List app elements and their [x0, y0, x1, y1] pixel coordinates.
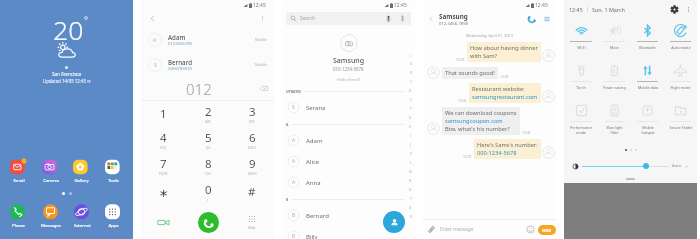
button[interactable]: Torch [564, 60, 598, 100]
button[interactable]: # [230, 179, 274, 205]
button[interactable]: Back [426, 14, 436, 24]
staticText: A [292, 137, 296, 144]
staticText: K [410, 152, 412, 156]
button[interactable]: Camera [42, 158, 59, 183]
button[interactable]: B [282, 205, 415, 226]
button[interactable]: 5 [186, 127, 230, 153]
button[interactable]: Delete [257, 82, 270, 95]
button[interactable]: How about having dinner [467, 42, 541, 62]
button[interactable]: Wi-Fi [564, 20, 598, 60]
button[interactable]: Mute [598, 20, 631, 60]
button[interactable]: More options [257, 13, 268, 24]
button[interactable]: Phone [10, 203, 27, 228]
staticText: JKL [206, 146, 211, 150]
staticText: Bluetooth [639, 45, 656, 50]
button[interactable]: Mobile hotspot [631, 100, 664, 140]
button[interactable]: Apps [105, 203, 122, 228]
staticText: Btw, what's his number? [445, 125, 510, 133]
staticText: M [409, 170, 412, 174]
button[interactable]: Internet [74, 203, 91, 228]
button[interactable]: A [282, 151, 415, 172]
button[interactable]: B [282, 226, 415, 239]
staticText: 12:34 [500, 74, 509, 78]
staticText: S [292, 104, 295, 111]
staticText: L [410, 161, 412, 165]
button[interactable] [582, 162, 669, 170]
button[interactable]: A [282, 172, 415, 193]
button[interactable]: 2 [186, 101, 230, 127]
button[interactable]: Search [286, 12, 411, 25]
button[interactable]: SEND [538, 225, 556, 235]
button[interactable]: That sounds good! [442, 67, 498, 79]
button[interactable]: 8 [186, 153, 230, 179]
button[interactable]: 7 [141, 153, 186, 179]
button[interactable]: S [141, 52, 274, 77]
button[interactable]: Blue light filter [598, 100, 631, 140]
button[interactable]: Gallery [73, 158, 90, 183]
button[interactable]: 9 [230, 153, 274, 179]
button[interactable]: 1 [141, 101, 186, 127]
staticText: D [409, 89, 412, 93]
button[interactable]: Call [186, 205, 230, 239]
staticText: 4 [160, 130, 167, 146]
button[interactable]: Video call [141, 205, 186, 239]
button[interactable]: Secure Folder [664, 100, 697, 140]
staticText: Mobile [255, 62, 268, 67]
staticText: UPDATES [286, 89, 301, 94]
button[interactable]: Call [527, 14, 537, 24]
button[interactable]: Settings [670, 5, 679, 14]
button[interactable]: 0 [186, 179, 230, 205]
button[interactable]: A [282, 130, 415, 151]
button[interactable]: We can download coupons [442, 107, 520, 135]
button[interactable]: 4 [141, 127, 186, 153]
button[interactable]: More options [542, 14, 552, 24]
staticText: Performance mode [570, 125, 592, 135]
staticText: Auto-rotate [671, 45, 691, 50]
button[interactable]: Power saving [598, 60, 631, 100]
button[interactable]: Email [10, 158, 27, 183]
button[interactable]: Emoji [526, 225, 535, 234]
staticText: 12:45 [569, 6, 583, 13]
button[interactable]: 6 [230, 127, 274, 153]
staticText: B [292, 212, 296, 219]
button[interactable]: Mobile data [631, 60, 664, 100]
staticText: Q [409, 206, 412, 210]
staticText: Gallery [74, 177, 89, 183]
staticText: + [207, 198, 209, 202]
staticText: 012 [186, 79, 212, 99]
button[interactable]: Profile photo [339, 33, 359, 53]
button[interactable]: S [282, 97, 415, 118]
staticText: 5 [205, 130, 212, 146]
button[interactable]: Auto-rotate [664, 20, 697, 60]
staticText: R [410, 215, 412, 219]
button[interactable]: Back [147, 13, 158, 24]
staticText: G [409, 116, 412, 120]
staticText: TUV [205, 172, 212, 176]
button[interactable]: Add contact [383, 211, 405, 233]
staticText: A [292, 158, 296, 165]
staticText: Search [300, 15, 316, 22]
staticText: Mobile [255, 37, 268, 42]
button[interactable]: Here's Sams's number: [474, 139, 541, 159]
staticText: Bernard [306, 212, 329, 220]
button[interactable]: Attach [427, 225, 436, 234]
staticText: Samsung [333, 56, 365, 66]
button[interactable]: Hide keypad [230, 205, 274, 239]
button[interactable]: ∗ [141, 179, 186, 205]
staticText: Mobile data [638, 85, 658, 90]
staticText: Billy [306, 233, 318, 239]
staticText: S [154, 62, 157, 69]
staticText: We can download coupons [445, 109, 517, 117]
staticText: 010-1234-5678 [333, 66, 364, 72]
button[interactable]: A [141, 27, 274, 52]
button[interactable]: Performance mode [564, 100, 598, 140]
button[interactable]: More options [684, 5, 693, 14]
button[interactable]: Restaurant website: [469, 83, 541, 103]
button[interactable]: Bluetooth [631, 20, 664, 60]
button[interactable]: Flight mode [664, 60, 697, 100]
button[interactable]: Tools [105, 158, 122, 183]
staticText: Sun, 1 March [592, 6, 625, 13]
button[interactable]: 3 [230, 101, 274, 127]
staticText: P [410, 197, 412, 201]
button[interactable]: Messages [41, 203, 61, 228]
